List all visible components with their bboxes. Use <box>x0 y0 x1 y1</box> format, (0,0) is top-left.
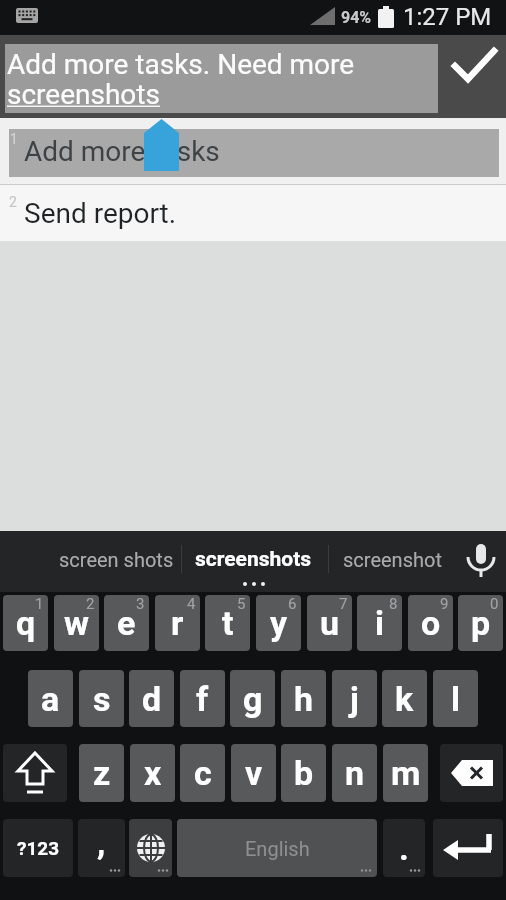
staticText: u <box>320 603 340 643</box>
button[interactable]: . <box>383 819 425 877</box>
button[interactable]: m <box>383 744 428 802</box>
staticText: w <box>64 603 89 643</box>
staticText: i <box>375 603 385 643</box>
staticText: screenshots <box>195 547 312 572</box>
button[interactable]: w <box>54 595 99 651</box>
button[interactable]: screenshots <box>186 531 320 587</box>
button[interactable]: n <box>332 744 377 802</box>
staticText: b <box>294 753 314 793</box>
button[interactable]: s <box>79 670 124 727</box>
button[interactable]: o <box>408 595 453 651</box>
button[interactable]: d <box>129 670 174 727</box>
staticText: 8 <box>389 595 398 613</box>
staticText: 5 <box>237 595 246 613</box>
button[interactable]: q <box>3 595 48 651</box>
staticText: d <box>142 679 162 719</box>
staticText: Send report. <box>24 197 177 230</box>
staticText: h <box>294 679 314 719</box>
staticText: g <box>243 679 263 719</box>
button[interactable]: u <box>307 595 352 651</box>
staticText: 1:27 PM <box>403 3 492 31</box>
staticText: Add more tasks <box>24 135 220 168</box>
staticText: 2 <box>86 595 95 613</box>
staticText: 1 <box>10 131 18 147</box>
button[interactable]: r <box>155 595 200 651</box>
staticText: 2 <box>9 194 17 210</box>
button[interactable]: a <box>28 670 73 727</box>
staticText: s <box>93 679 111 719</box>
staticText: 9 <box>440 595 449 613</box>
button[interactable]: x <box>130 744 175 802</box>
button[interactable] <box>466 544 496 577</box>
button[interactable]: j <box>332 670 377 727</box>
button[interactable] <box>3 744 67 802</box>
staticText: 3 <box>136 595 145 613</box>
staticText: Add more tasks. Need more screenshots <box>7 48 435 112</box>
staticText: screen shots <box>59 548 174 571</box>
button[interactable]: 1 <box>0 118 506 184</box>
staticText: t <box>222 603 234 643</box>
button[interactable] <box>440 744 503 802</box>
staticText: , <box>97 822 106 862</box>
staticText: p <box>471 603 491 643</box>
button[interactable]: English <box>177 819 377 877</box>
staticText: j <box>350 679 359 719</box>
staticText: x <box>144 753 162 793</box>
button[interactable]: z <box>79 744 124 802</box>
staticText: English <box>245 837 310 860</box>
staticText: 1 <box>35 595 44 613</box>
staticText: c <box>194 753 212 793</box>
staticText: 6 <box>288 595 297 613</box>
staticText: 7 <box>339 595 348 613</box>
staticText: 4 <box>187 595 196 613</box>
button[interactable]: screen shots <box>30 531 202 587</box>
staticText: l <box>451 679 461 719</box>
button[interactable]: y <box>256 595 301 651</box>
button[interactable]: g <box>230 670 275 727</box>
button[interactable] <box>129 819 172 877</box>
staticText: screenshot <box>343 548 442 571</box>
button[interactable]: b <box>281 744 326 802</box>
button[interactable]: v <box>231 744 276 802</box>
staticText: a <box>41 679 60 719</box>
button[interactable]: h <box>281 670 326 727</box>
staticText: y <box>270 603 288 643</box>
staticText: m <box>391 753 421 793</box>
button[interactable] <box>452 49 497 82</box>
button[interactable]: f <box>180 670 225 727</box>
button[interactable]: e <box>104 595 149 651</box>
button[interactable]: ?123 <box>3 819 73 877</box>
button[interactable] <box>433 819 503 877</box>
staticText: ?123 <box>17 837 60 859</box>
staticText: r <box>171 603 184 643</box>
staticText: e <box>117 603 136 643</box>
staticText: v <box>245 753 263 793</box>
staticText: 94% <box>341 8 372 27</box>
button[interactable]: screenshot <box>330 531 454 587</box>
button[interactable]: Add more tasks. Need more screenshots <box>5 44 438 113</box>
staticText: o <box>421 603 441 643</box>
staticText: 0 <box>490 595 499 613</box>
button[interactable]: c <box>180 744 225 802</box>
button[interactable]: p <box>458 595 503 651</box>
button[interactable]: i <box>357 595 402 651</box>
button[interactable]: t <box>205 595 250 651</box>
staticText: . <box>399 828 409 868</box>
staticText: z <box>93 753 111 793</box>
staticText: k <box>395 679 414 719</box>
button[interactable]: 2 <box>0 185 506 241</box>
staticText: f <box>196 679 209 719</box>
button[interactable]: k <box>382 670 427 727</box>
staticText: q <box>16 603 36 643</box>
staticText: n <box>345 753 365 793</box>
button[interactable]: , <box>78 819 125 877</box>
button[interactable]: l <box>433 670 478 727</box>
